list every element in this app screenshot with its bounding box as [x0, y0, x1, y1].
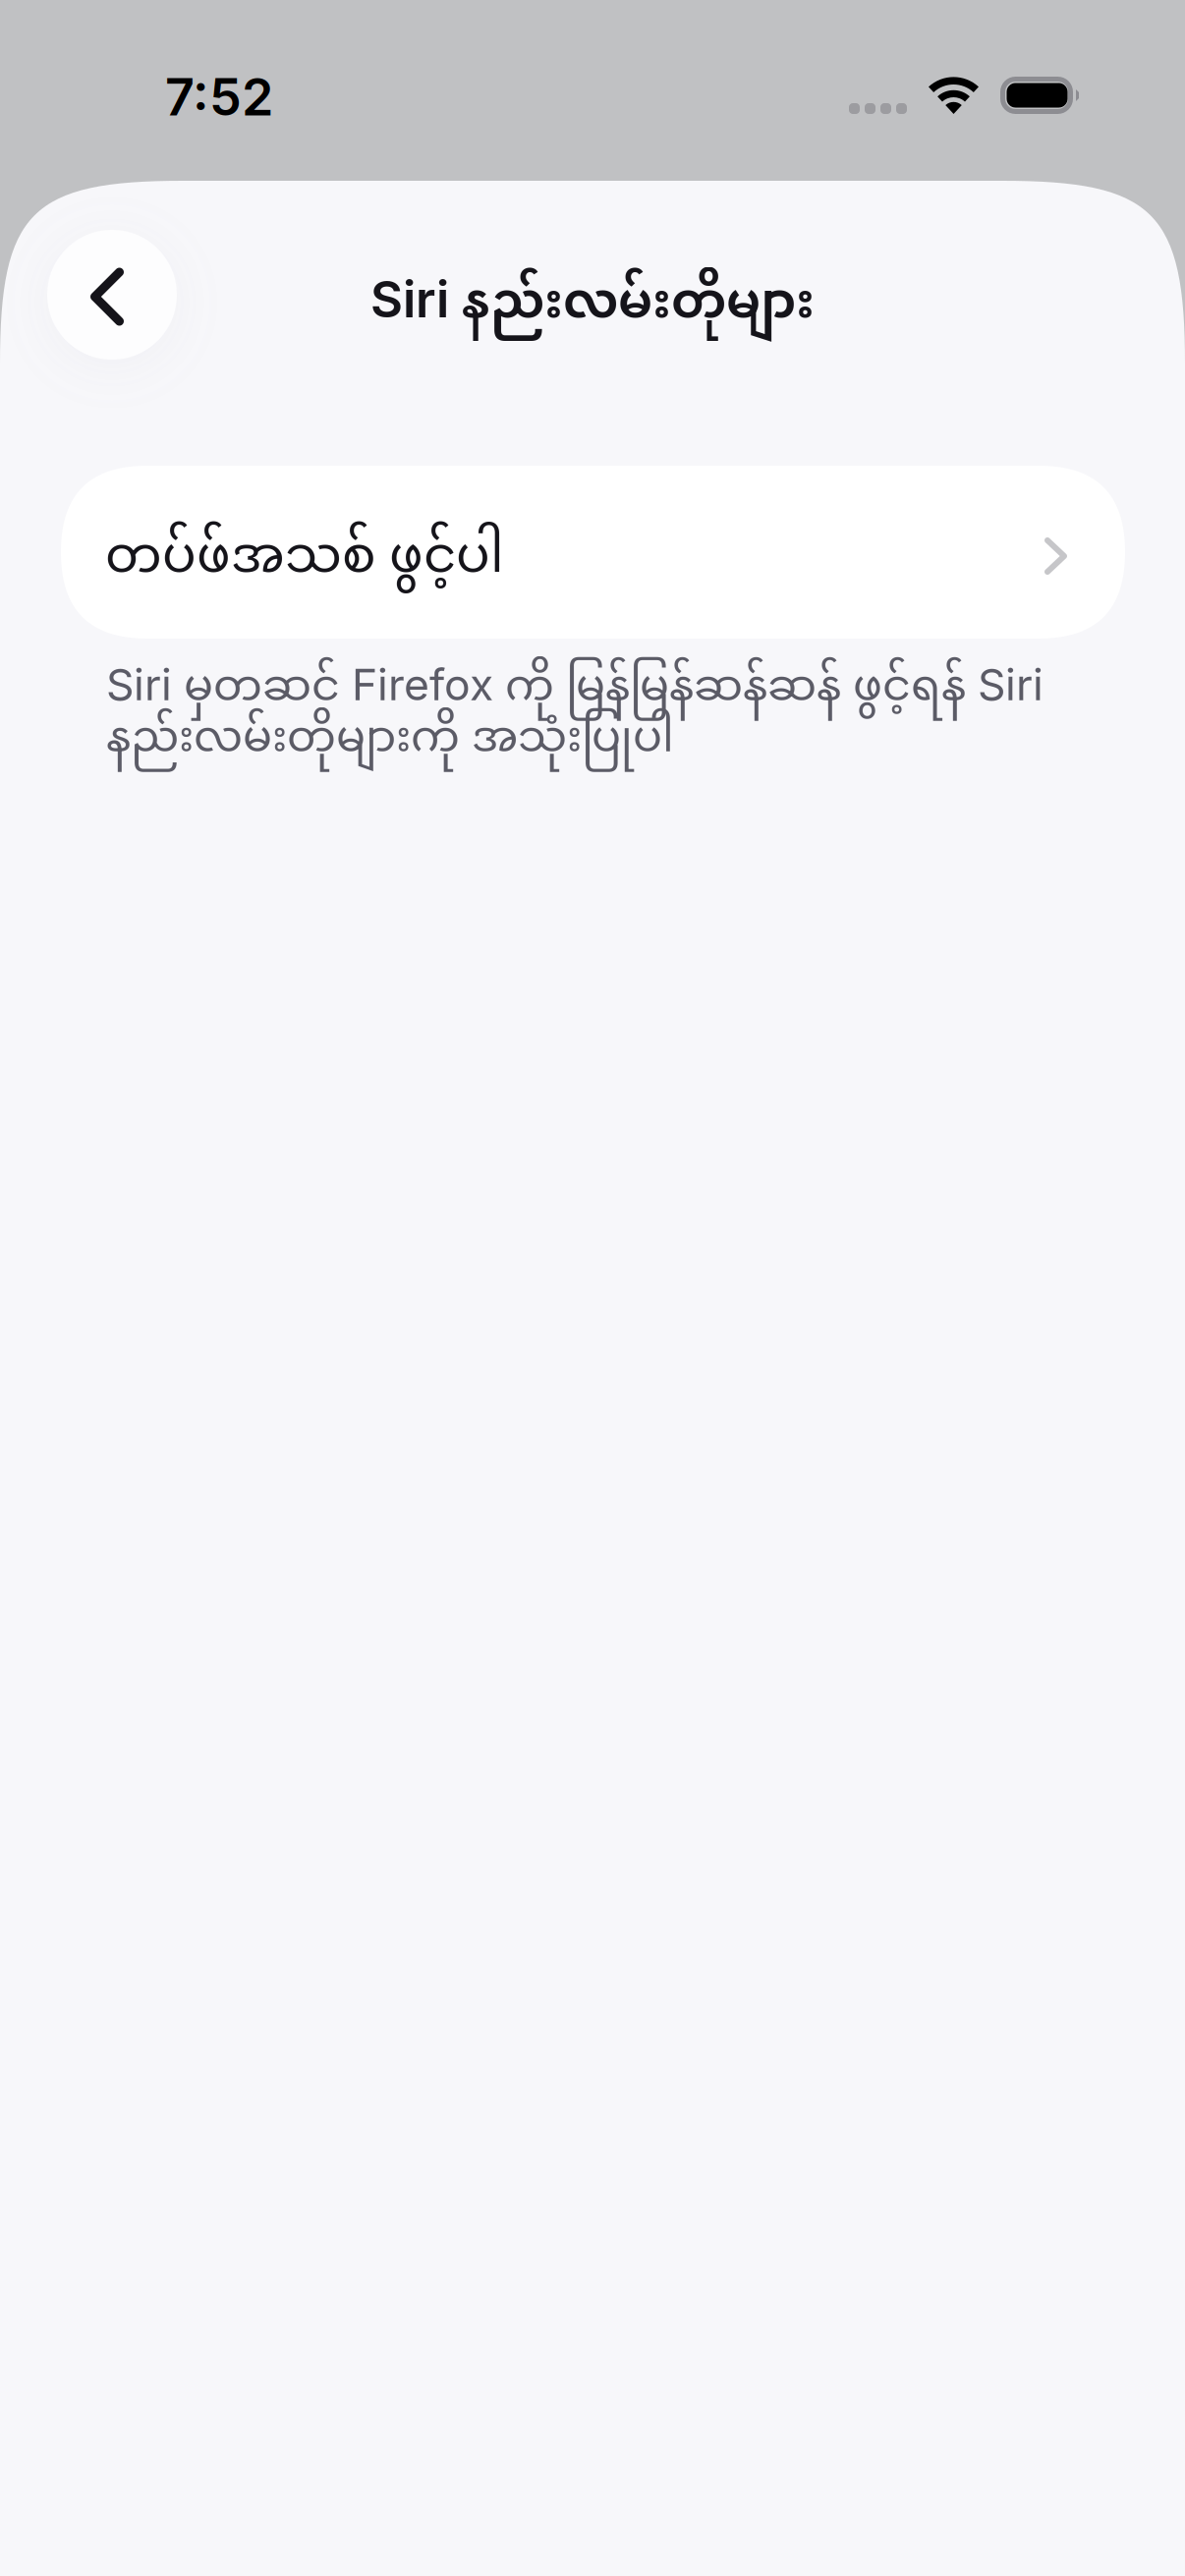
staticText: Siri မှတဆင် Firefox ကို မြန်မြန်ဆန်ဆန် ဖ…: [106, 643, 1044, 789]
button[interactable]: Back: [47, 230, 177, 360]
button[interactable]: တပ်ဖ်အသစ် ဖွင့်ပါ: [61, 466, 1125, 639]
staticText: 7:52: [165, 66, 273, 128]
staticText: Siri နည်းလမ်းတိုများ: [370, 252, 815, 360]
staticText: တပ်ဖ်အသစ် ဖွင့်ပါ: [105, 505, 504, 615]
